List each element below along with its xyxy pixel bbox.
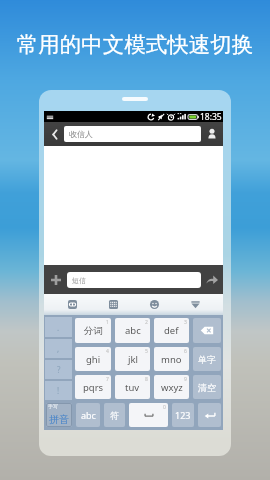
- staticText: 123: [175, 409, 191, 421]
- button[interactable]: mno: [154, 347, 189, 371]
- button[interactable]: 单字: [193, 347, 221, 371]
- staticText: 7: [106, 376, 109, 383]
- button[interactable]: Add attachment: [44, 265, 67, 294]
- staticText: tuv: [125, 381, 140, 394]
- staticText: pqrs: [83, 381, 104, 394]
- staticText: .: [57, 322, 60, 333]
- button[interactable]: pqrs: [75, 375, 111, 399]
- button[interactable]: Keyboard: [100, 294, 126, 315]
- staticText: 4: [106, 348, 109, 355]
- staticText: ghi: [86, 353, 101, 366]
- button[interactable]: ?: [45, 360, 72, 379]
- button[interactable]: 0: [129, 403, 168, 427]
- staticText: !: [57, 385, 60, 396]
- staticText: 18:35: [200, 111, 222, 122]
- button[interactable]: 手写: [46, 403, 72, 427]
- button[interactable]: abc: [115, 318, 150, 343]
- staticText: 收信人: [69, 129, 93, 139]
- button[interactable]: Enter: [198, 403, 221, 427]
- staticText: 0: [163, 404, 166, 411]
- button[interactable]: 符: [104, 403, 125, 427]
- button[interactable]: Choose contact: [201, 122, 223, 146]
- staticText: abc: [81, 409, 96, 421]
- staticText: 5: [145, 348, 148, 355]
- staticText: 短信: [72, 276, 86, 285]
- staticText: 单字: [198, 354, 216, 365]
- staticText: 2: [145, 319, 148, 326]
- staticText: ,: [57, 343, 60, 354]
- button[interactable]: wxyz: [154, 375, 189, 399]
- staticText: 8: [145, 376, 148, 383]
- staticText: 分词: [84, 325, 103, 337]
- staticText: 拼音: [49, 413, 69, 426]
- button[interactable]: 分词: [75, 318, 111, 343]
- staticText: jkl: [128, 353, 138, 366]
- staticText: 1: [106, 319, 109, 326]
- staticText: 9: [184, 376, 187, 383]
- staticText: ?: [57, 364, 61, 375]
- button[interactable]: Emoji: [141, 294, 167, 315]
- button[interactable]: abc: [76, 403, 100, 427]
- staticText: mno: [161, 353, 182, 366]
- staticText: 清空: [198, 382, 216, 393]
- staticText: abc: [125, 324, 141, 337]
- button[interactable]: jkl: [115, 347, 150, 371]
- staticText: 符: [110, 410, 119, 421]
- button[interactable]: Input language: [59, 294, 85, 315]
- button[interactable]: ghi: [75, 347, 111, 371]
- staticText: 手写: [48, 403, 58, 409]
- staticText: def: [164, 324, 179, 337]
- button[interactable]: 短信: [67, 272, 201, 288]
- button[interactable]: Hide keyboard: [182, 294, 208, 315]
- staticText: 3: [184, 319, 187, 326]
- staticText: 常用的中文模式快速切换: [0, 31, 270, 58]
- button[interactable]: Key: [193, 318, 221, 343]
- button[interactable]: 收信人: [64, 126, 201, 142]
- staticText: wxyz: [161, 381, 183, 394]
- staticText: 6: [184, 348, 187, 355]
- button[interactable]: Send: [201, 265, 223, 294]
- button[interactable]: 123: [172, 403, 194, 427]
- button[interactable]: def: [154, 318, 189, 343]
- button[interactable]: tuv: [115, 375, 150, 399]
- button[interactable]: 清空: [193, 375, 221, 399]
- button[interactable]: Back: [44, 122, 64, 146]
